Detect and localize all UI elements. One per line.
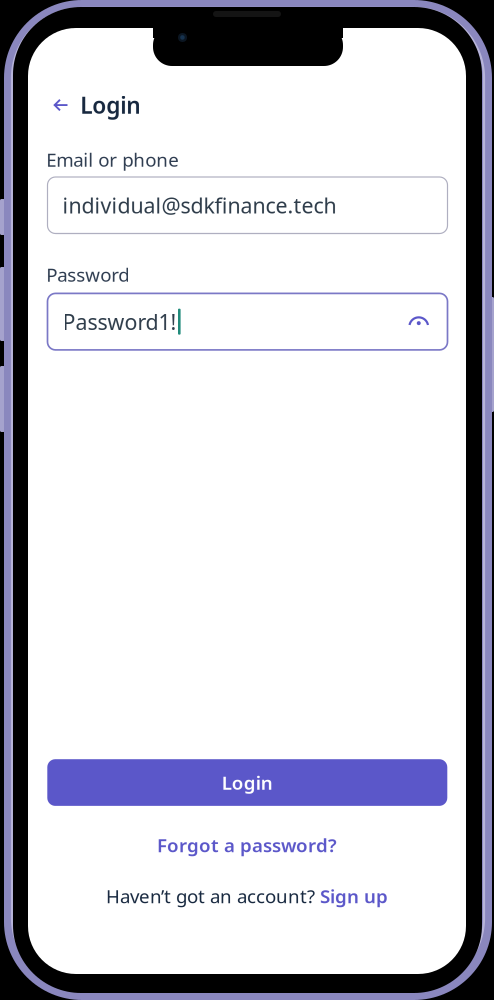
button[interactable]: Login (47, 759, 447, 806)
staticText: Login (80, 90, 140, 120)
staticText: Password1! (62, 307, 176, 336)
button[interactable]: individual@sdkfinance.tech (47, 177, 447, 233)
button[interactable]: Sign up (315, 884, 388, 908)
button[interactable]: Password1! (47, 293, 447, 350)
staticText: Forgot a password? (157, 833, 337, 857)
staticText: Email or phone (46, 147, 179, 172)
staticText: Login (222, 770, 273, 795)
button[interactable]: Forgot a password? (28, 833, 466, 857)
button[interactable]: Show password (406, 314, 431, 329)
staticText: Password (46, 262, 129, 287)
staticText: Sign up (315, 884, 388, 908)
staticText: individual@sdkfinance.tech (62, 191, 336, 219)
button[interactable]: Login (28, 82, 156, 128)
staticText: Haven’t got an account? (106, 884, 315, 908)
